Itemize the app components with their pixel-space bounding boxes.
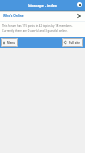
staticText: bioscape - index <box>28 3 57 8</box>
button[interactable]: Full site <box>62 38 83 47</box>
button[interactable]: Account <box>75 0 84 9</box>
staticText: Menu <box>7 41 15 45</box>
staticText: Who's Online <box>3 14 24 18</box>
staticText: Currently there are 0 user(s) and 3 gues… <box>2 29 68 33</box>
button[interactable]: Who's Online <box>0 12 85 21</box>
staticText: Full site <box>69 41 80 45</box>
staticText: This forum has 115 posts in 42 topics by… <box>2 24 73 28</box>
button[interactable]: Menu <box>1 38 18 47</box>
